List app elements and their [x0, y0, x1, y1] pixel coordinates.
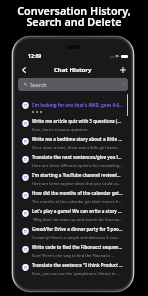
staticText: "Why don't we team up and search for foo…: [32, 217, 123, 222]
staticText: Here are three different options for tra…: [32, 163, 123, 168]
button[interactable]: Translate the next sentences/give you lm…: [15, 150, 131, 168]
button[interactable]: Write code to find the Fibonacci sequenc…: [15, 240, 131, 258]
button[interactable]: Back: [18, 64, 29, 75]
staticText: Write me a bedtime story about a little …: [32, 136, 123, 142]
staticText: The months of the calendar get their nam…: [32, 199, 123, 204]
staticText: I'm starting a YouTube channel reviewing…: [32, 172, 123, 178]
staticText: Sure, here's a bonus question:: [32, 127, 89, 132]
button[interactable]: Greed/for Drive a dinner party for 5 peo…: [15, 222, 131, 240]
staticText: How did the months of the calendar get t…: [32, 190, 123, 196]
button[interactable]: Search: [18, 78, 128, 91]
button[interactable]: Write me a bedtime story about a little …: [15, 132, 131, 150]
button[interactable]: New chat: [117, 64, 128, 75]
staticText: Once upon a time, there was a little gir…: [32, 145, 123, 150]
button[interactable]: How did the months of the calendar get t…: [15, 186, 131, 204]
staticText: I'm looking for one that's AWD, goes 0-6…: [32, 102, 123, 108]
staticText: Let's play a game! We can write a story …: [32, 208, 123, 214]
staticText: Write code to find the Fibonacci sequenc…: [32, 244, 123, 250]
staticText: Greed/for Drive a dinner party for 5 peo…: [32, 226, 123, 232]
button[interactable]: Translate the sentence "I think Product …: [15, 258, 131, 276]
staticText: Here are some tagline ideas that you cou…: [32, 181, 123, 186]
staticText: Write me article quiz with 5 questions (…: [32, 118, 123, 124]
staticText: 12:09: [28, 52, 42, 59]
staticText: Translate the sentence "I think Product …: [32, 262, 123, 268]
button[interactable]: I'm looking for one that's AWD, goes 0-6…: [15, 96, 131, 114]
button[interactable]: I'm starting a YouTube channel reviewing…: [15, 168, 131, 186]
staticText: Chat History: [54, 66, 92, 74]
staticText: Sure, you can use the 'googletrans' libr…: [32, 271, 120, 276]
staticText: Conversation History, Search and Delete: [0, 3, 148, 29]
staticText: Search: [30, 81, 47, 88]
staticText: Sure! Here's one way to find the Fibonac…: [32, 253, 115, 258]
staticText: Translate the next sentences/give you lm…: [32, 154, 123, 160]
button[interactable]: Let's play a game! We can write a story …: [15, 204, 131, 222]
staticText: Certainly! Here's a simple and delicious…: [32, 235, 123, 240]
button[interactable]: Write me article quiz with 5 questions (…: [15, 114, 131, 132]
